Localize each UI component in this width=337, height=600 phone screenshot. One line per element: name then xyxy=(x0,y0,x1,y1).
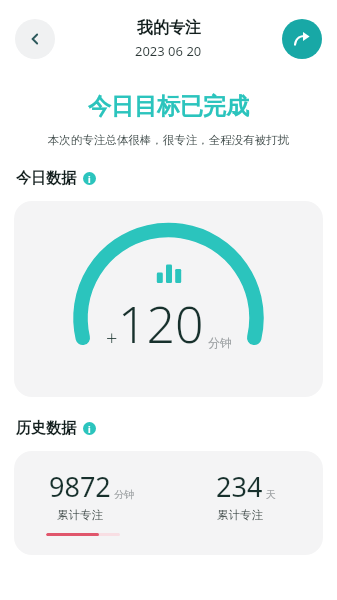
staticText: 本次的专注总体很棒，很专注，全程没有被打扰 xyxy=(0,133,337,147)
staticText: 2023 06 20 xyxy=(135,42,202,60)
staticText: 我的专注 xyxy=(137,18,201,38)
staticText: 9872 xyxy=(49,468,111,505)
button[interactable]: Info about 今日数据 xyxy=(83,172,96,185)
button[interactable]: Back xyxy=(15,19,55,59)
button[interactable]: 9872 xyxy=(14,451,323,555)
staticText: i xyxy=(88,173,91,185)
staticText: 累计专注 xyxy=(57,508,103,522)
staticText: i xyxy=(88,423,91,435)
staticText: 120 xyxy=(118,290,204,358)
staticText: 今日数据 xyxy=(16,169,76,188)
staticText: 今日目标已完成 xyxy=(0,92,337,121)
staticText: 分钟 xyxy=(208,335,232,350)
staticText: + xyxy=(106,324,118,351)
button[interactable]: + xyxy=(14,201,323,397)
staticText: 历史数据 xyxy=(16,419,76,438)
staticText: 天 xyxy=(266,488,276,501)
button[interactable]: Info about 历史数据 xyxy=(83,422,96,435)
staticText: 累计专注 xyxy=(217,508,263,522)
button[interactable]: Share xyxy=(282,19,322,59)
staticText: 分钟 xyxy=(114,488,134,501)
staticText: 234 xyxy=(216,468,263,505)
